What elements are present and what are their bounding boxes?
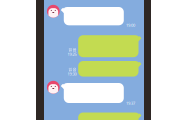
staticText: 19:25 bbox=[67, 52, 76, 57]
staticText: 19:30 bbox=[67, 71, 76, 77]
staticText: 읽음 bbox=[68, 67, 76, 72]
staticText: 읽음 bbox=[68, 47, 76, 52]
staticText: 19:37 bbox=[126, 100, 135, 106]
staticText: 19:00 bbox=[126, 23, 135, 28]
